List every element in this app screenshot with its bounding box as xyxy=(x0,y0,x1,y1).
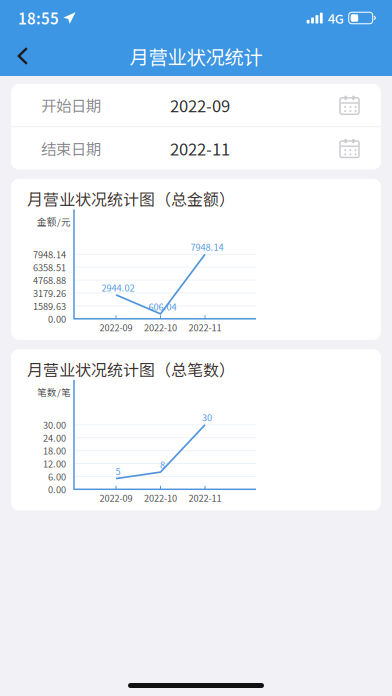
staticText: 2022-09 xyxy=(99,321,132,334)
staticText: 2944.02 xyxy=(101,281,134,294)
staticText: 2022-10 xyxy=(144,491,177,504)
staticText: 6.00 xyxy=(48,470,66,483)
staticText: 2022-09 xyxy=(170,93,230,117)
staticText: 24.00 xyxy=(43,431,66,444)
staticText: 30 xyxy=(202,411,212,424)
staticText: 2022-11 xyxy=(188,491,221,504)
staticText: 0.00 xyxy=(48,483,66,496)
staticText: 4G xyxy=(328,9,344,27)
staticText: 7948.14 xyxy=(190,240,223,253)
staticText: 4768.88 xyxy=(33,273,66,287)
staticText: 606.04 xyxy=(148,300,176,313)
staticText: 3179.26 xyxy=(33,286,66,300)
staticText: 7948.14 xyxy=(33,248,66,261)
staticText: 月营业状况统计图（总笔数） xyxy=(27,357,235,381)
staticText: 金额/元 xyxy=(37,214,71,228)
button[interactable]: 返回 xyxy=(0,36,46,76)
staticText: 18:55 xyxy=(18,7,59,29)
staticText: 5 xyxy=(115,464,120,478)
staticText: 0.00 xyxy=(48,312,66,325)
staticText: 18.00 xyxy=(43,444,66,457)
staticText: 开始日期 xyxy=(41,94,101,116)
staticText: 8 xyxy=(160,458,165,471)
staticText: 月营业状况统计图（总金额） xyxy=(27,187,235,210)
staticText: 月营业状况统计 xyxy=(129,42,262,70)
staticText: 1589.63 xyxy=(33,299,66,312)
button[interactable]: 结束日期 xyxy=(11,127,381,169)
staticText: 6358.51 xyxy=(33,260,66,274)
staticText: 2022-10 xyxy=(144,321,177,334)
staticText: 2022-11 xyxy=(170,136,230,160)
staticText: 30.00 xyxy=(43,418,66,431)
button[interactable]: 开始日期 xyxy=(11,84,381,126)
staticText: 2022-09 xyxy=(99,491,132,504)
staticText: 2022-11 xyxy=(188,321,221,334)
staticText: 结束日期 xyxy=(41,137,101,159)
staticText: 12.00 xyxy=(43,457,66,470)
staticText: 笔数/笔 xyxy=(37,385,71,399)
